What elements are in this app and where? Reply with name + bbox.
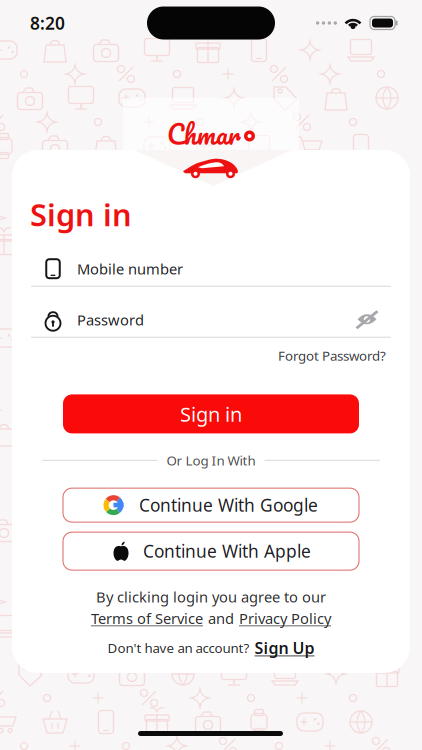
- button[interactable]: Privacy Policy: [239, 609, 331, 628]
- button[interactable]: Forgot Password?: [278, 347, 386, 364]
- staticText: Sign Up: [254, 637, 314, 658]
- button[interactable]: Terms of Service: [91, 609, 203, 628]
- button[interactable]: Show password: [356, 310, 392, 330]
- staticText: 8:20: [30, 11, 65, 34]
- staticText: Privacy Policy: [239, 609, 331, 628]
- staticText: Don't have an account?: [107, 639, 249, 657]
- staticText: Password: [77, 310, 144, 329]
- staticText: Or Log In With: [166, 451, 255, 469]
- staticText: Mobile number: [77, 259, 183, 278]
- staticText: Continue With Google: [139, 494, 318, 517]
- staticText: Chmar: [167, 112, 241, 156]
- button[interactable]: Sign in: [63, 394, 359, 433]
- staticText: Sign in: [180, 401, 242, 427]
- staticText: Terms of Service: [91, 609, 203, 628]
- staticText: Continue With Apple: [143, 540, 311, 563]
- button[interactable]: Continue With Apple: [63, 532, 359, 570]
- button[interactable]: Continue With Google: [63, 488, 359, 522]
- staticText: and: [208, 609, 234, 628]
- button[interactable]: Sign Up: [254, 637, 314, 658]
- staticText: By clicking login you agree to our: [96, 587, 326, 607]
- staticText: Forgot Password?: [278, 347, 386, 364]
- staticText: Sign in: [30, 194, 132, 235]
